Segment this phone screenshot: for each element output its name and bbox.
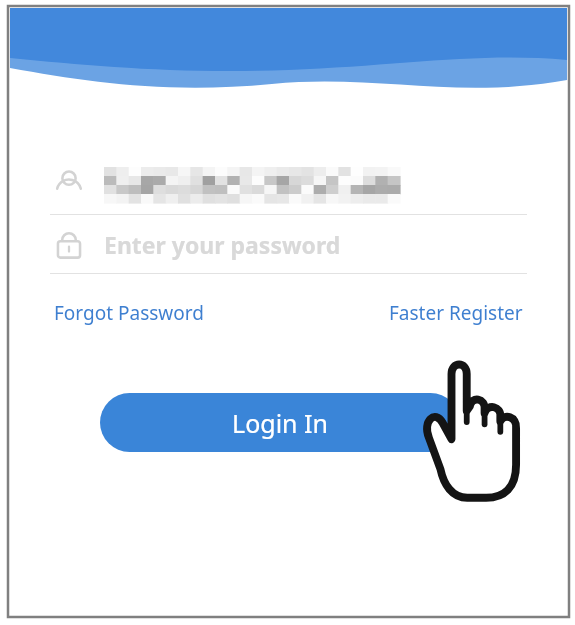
button[interactable]: Forgot Password — [54, 296, 204, 330]
staticText: Login In — [232, 406, 328, 440]
button[interactable]: Faster Register — [389, 296, 523, 330]
other: Pointer cursor — [420, 353, 525, 503]
staticText: Faster Register — [389, 300, 523, 326]
staticText: Forgot Password — [54, 300, 204, 326]
staticText: Enter your password — [104, 229, 341, 260]
button[interactable]: Enter your password — [52, 215, 525, 273]
button[interactable]: Login In — [100, 393, 460, 452]
button[interactable] — [52, 156, 525, 214]
